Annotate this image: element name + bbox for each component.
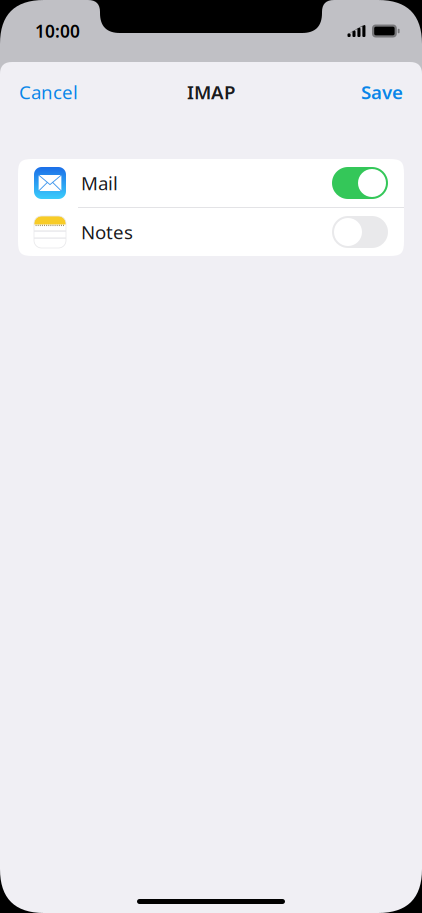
staticText: Save [361,80,403,104]
staticText: IMAP [187,80,235,104]
staticText: 10:00 [35,19,80,42]
staticText: Cancel [19,80,78,104]
staticText: Mail [81,171,118,195]
button[interactable]: Mail [18,159,404,207]
button[interactable]: Cancel [15,72,82,112]
button[interactable]: Notes [18,208,404,256]
staticText: Notes [81,220,133,244]
button[interactable]: Save [357,72,407,112]
